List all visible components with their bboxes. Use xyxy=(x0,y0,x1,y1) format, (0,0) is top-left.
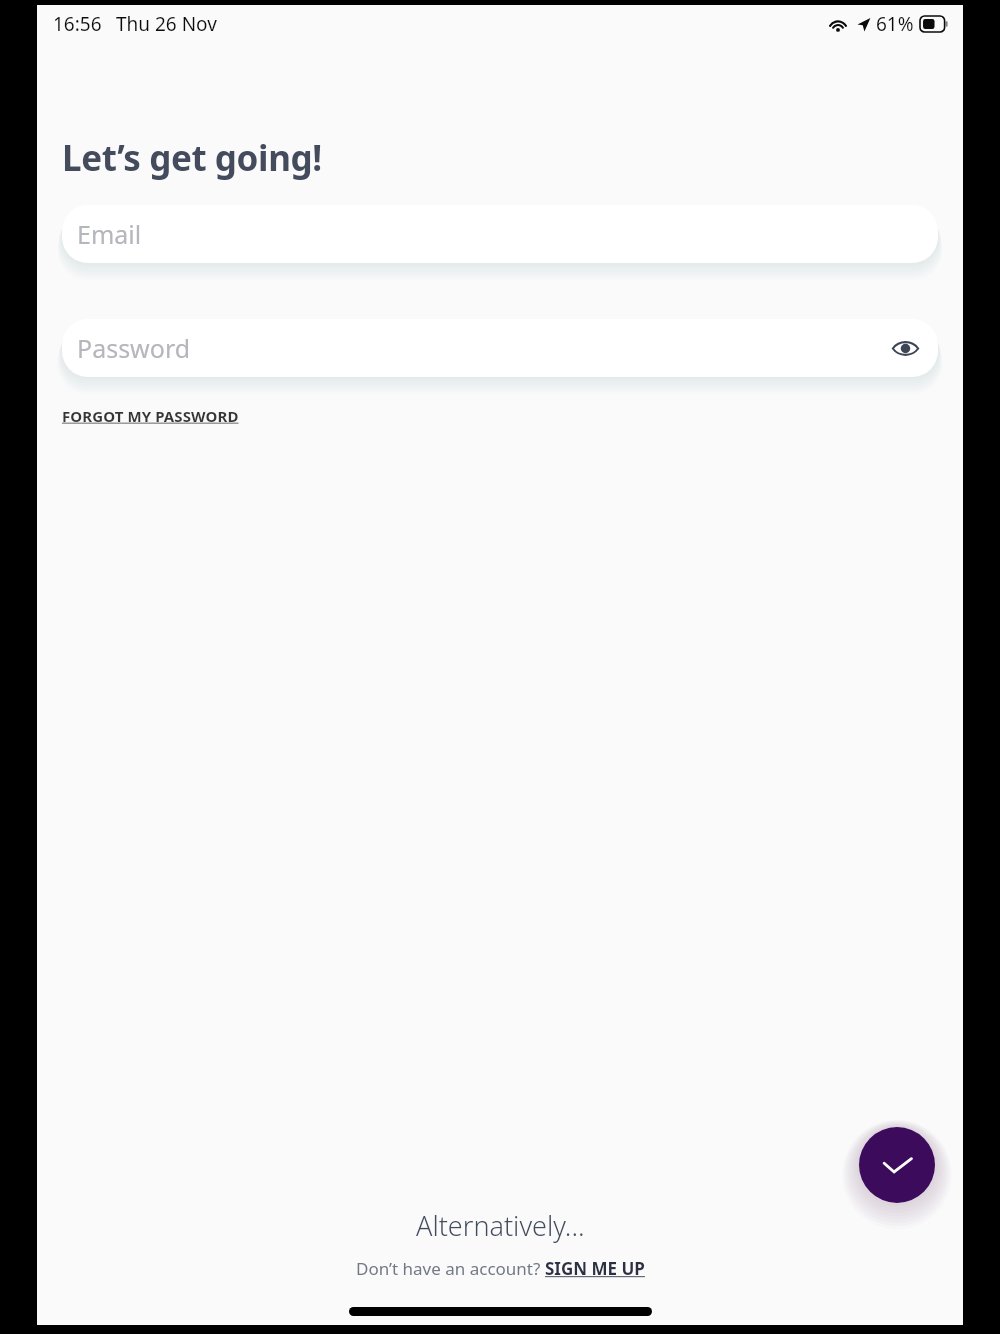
button[interactable]: Confirm xyxy=(859,1127,935,1203)
staticText: 61% xyxy=(876,11,914,37)
staticText: Don’t have an account? xyxy=(356,1257,545,1280)
button[interactable]: Show password xyxy=(886,329,924,367)
staticText: Password xyxy=(77,331,886,365)
staticText: 16:56 xyxy=(53,11,102,37)
button[interactable]: FORGOT MY PASSWORD xyxy=(62,404,239,428)
staticText: Alternatively... xyxy=(416,1207,585,1244)
staticText: Thu 26 Nov xyxy=(116,11,217,37)
staticText: SIGN ME UP xyxy=(545,1257,645,1280)
staticText: Email xyxy=(77,217,924,251)
button[interactable]: Password xyxy=(62,319,938,377)
staticText: Let’s get going! xyxy=(62,134,322,182)
staticText: FORGOT MY PASSWORD xyxy=(62,406,239,426)
button[interactable]: SIGN ME UP xyxy=(545,1257,645,1280)
button[interactable]: Email xyxy=(62,205,938,263)
